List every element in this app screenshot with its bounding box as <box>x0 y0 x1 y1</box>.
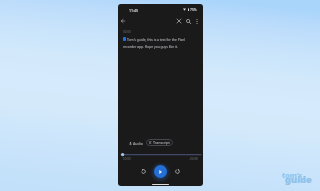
staticText: 75% <box>190 7 197 11</box>
button[interactable]: Replay 10 seconds <box>137 165 149 177</box>
staticText: 00:00 <box>123 30 131 34</box>
button[interactable]: Forward 10 seconds <box>171 165 183 177</box>
button[interactable]: Transcript <box>146 139 173 146</box>
staticText: tom's <box>282 170 303 180</box>
staticText: 00:00 <box>123 157 131 161</box>
staticText: guide <box>285 173 312 186</box>
button[interactable]: Play <box>154 165 167 178</box>
staticText: -00:08 <box>189 157 198 161</box>
staticText: recorder app. Hope you guys like it. <box>123 44 178 48</box>
button[interactable]: More options <box>192 16 202 26</box>
button[interactable]: Back <box>118 16 128 26</box>
staticText: Transcript <box>153 140 170 145</box>
staticText: Tom's guide, this is a test for the Pixe… <box>127 37 185 41</box>
button[interactable]: Close <box>174 16 184 26</box>
staticText: Audio <box>133 141 143 146</box>
button[interactable]: Seek bar <box>121 153 201 157</box>
staticText: 11:45 <box>129 8 138 13</box>
button[interactable]: Search <box>183 16 193 26</box>
button[interactable]: Audio <box>126 139 146 147</box>
